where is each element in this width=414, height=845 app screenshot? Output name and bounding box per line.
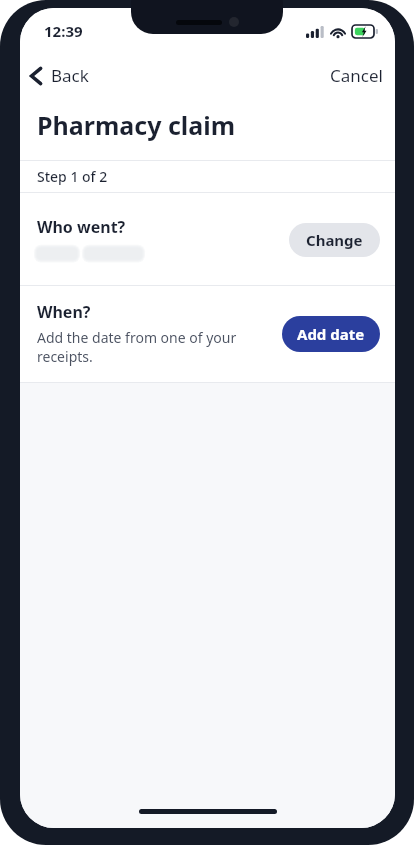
staticText: Add the date from one of your receipts. xyxy=(37,328,237,366)
button[interactable]: Add date xyxy=(282,316,380,352)
button[interactable]: Cancel xyxy=(318,59,395,92)
other: Wi-Fi xyxy=(330,26,346,38)
button[interactable]: Back xyxy=(20,60,99,91)
other: Battery charging xyxy=(352,25,377,38)
staticText: Pharmacy claim xyxy=(37,108,236,142)
staticText: Who went? xyxy=(37,216,126,238)
staticText: Step 1 of 2 xyxy=(37,167,108,186)
staticText: Add date xyxy=(297,324,365,344)
staticText: When? xyxy=(37,301,91,323)
button[interactable]: Change xyxy=(289,223,380,257)
staticText: Change xyxy=(306,230,363,250)
other: Cellular signal xyxy=(306,26,324,38)
staticText: 12:39 xyxy=(44,21,83,41)
staticText: Back xyxy=(51,64,89,87)
staticText: Cancel xyxy=(330,64,383,87)
